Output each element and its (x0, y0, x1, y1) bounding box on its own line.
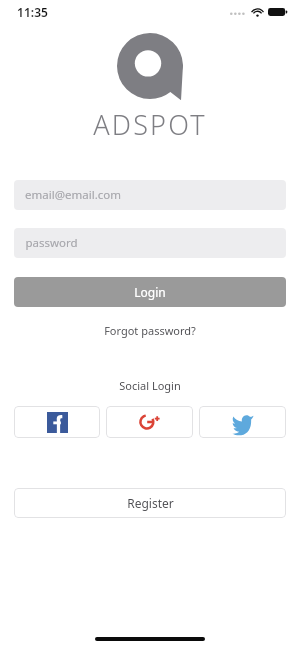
staticText: Login (134, 284, 166, 300)
button[interactable]: Register (14, 488, 286, 518)
button[interactable]: Forgot password? (98, 320, 202, 341)
button[interactable]: email@email.com (14, 180, 286, 210)
staticText: ADSPOT (93, 106, 207, 143)
staticText: email@email.com (25, 187, 121, 203)
button[interactable]: Sign in with Twitter (199, 406, 286, 438)
button[interactable]: password (14, 228, 286, 258)
button[interactable]: Login (14, 277, 286, 307)
button[interactable]: Sign in with Facebook (14, 406, 100, 438)
staticText: 11:35 (17, 4, 48, 20)
staticText: Register (127, 495, 174, 511)
staticText: Social Login (119, 378, 181, 393)
staticText: password (25, 235, 78, 251)
button[interactable]: Sign in with Google Plus (106, 406, 193, 438)
staticText: Forgot password? (104, 323, 196, 338)
